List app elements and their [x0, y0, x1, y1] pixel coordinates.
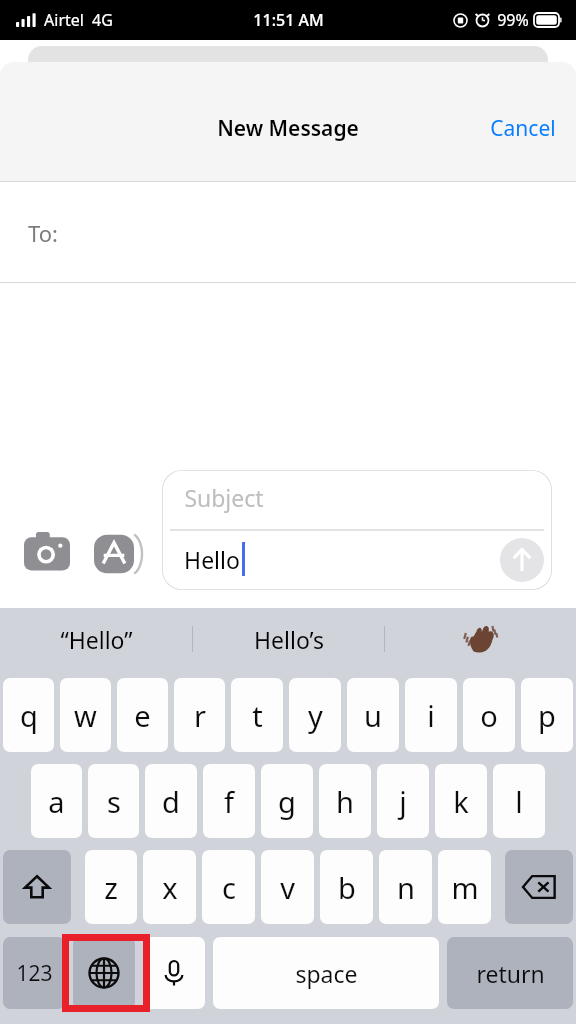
staticText: e: [134, 696, 151, 735]
button[interactable]: e: [117, 678, 168, 752]
button[interactable]: t: [231, 678, 283, 752]
button[interactable]: z: [85, 850, 137, 924]
staticText: c: [222, 868, 236, 907]
staticText: “Hello”: [60, 624, 133, 655]
staticText: w: [74, 696, 97, 735]
staticText: New Message: [217, 114, 359, 143]
staticText: j: [399, 782, 407, 821]
button[interactable]: r: [174, 678, 225, 752]
button[interactable]: l: [493, 764, 545, 838]
staticText: z: [104, 868, 118, 907]
button[interactable]: y: [289, 678, 341, 752]
staticText: Hello’s: [254, 624, 324, 655]
button[interactable]: space: [213, 937, 439, 1009]
staticText: b: [338, 868, 356, 907]
button[interactable]: Send: [500, 538, 544, 582]
staticText: t: [252, 696, 263, 735]
staticText: n: [397, 868, 415, 907]
staticText: 99%: [497, 9, 529, 31]
button[interactable]: m: [438, 850, 491, 924]
button[interactable]: p: [521, 678, 573, 752]
button[interactable]: Change keyboard language: [73, 937, 135, 1009]
button[interactable]: i: [405, 678, 457, 752]
staticText: p: [538, 696, 556, 735]
button[interactable]: k: [435, 764, 487, 838]
button[interactable]: n: [379, 850, 432, 924]
button[interactable]: v: [261, 850, 314, 924]
staticText: l: [515, 782, 523, 821]
button[interactable]: return: [447, 937, 573, 1009]
staticText: f: [224, 782, 234, 821]
staticText: 11:51 AM: [253, 9, 324, 31]
staticText: q: [20, 696, 38, 735]
staticText: space: [295, 958, 358, 989]
button[interactable]: Cancel: [470, 104, 576, 153]
staticText: m: [451, 868, 479, 907]
staticText: Subject: [184, 482, 264, 513]
staticText: To:: [28, 218, 58, 248]
staticText: Airtel: [44, 9, 84, 31]
button[interactable]: s: [88, 764, 139, 838]
button[interactable]: Dictation: [143, 937, 205, 1009]
button[interactable]: j: [377, 764, 429, 838]
button[interactable]: 123: [3, 937, 65, 1009]
button[interactable]: w: [60, 678, 111, 752]
button[interactable]: “Hello”: [0, 608, 192, 670]
staticText: i: [427, 696, 435, 735]
button[interactable]: Shift: [3, 850, 71, 924]
button[interactable]: a: [31, 764, 82, 838]
button[interactable]: f: [203, 764, 255, 838]
staticText: r: [194, 696, 206, 735]
button[interactable]: Camera: [24, 530, 70, 576]
button[interactable]: q: [3, 678, 54, 752]
staticText: d: [162, 782, 180, 821]
button[interactable]: d: [145, 764, 197, 838]
staticText: 123: [16, 959, 53, 988]
button[interactable]: Subject: [162, 470, 552, 590]
staticText: s: [107, 782, 121, 821]
button[interactable]: h: [319, 764, 371, 838]
button[interactable]: Backspace: [505, 850, 573, 924]
staticText: g: [278, 782, 296, 821]
staticText: 4G: [92, 9, 113, 31]
button[interactable]: App Store apps: [94, 532, 144, 576]
button[interactable]: b: [320, 850, 373, 924]
staticText: Cancel: [490, 114, 556, 143]
staticText: return: [476, 958, 545, 989]
button[interactable]: x: [143, 850, 196, 924]
button[interactable]: u: [347, 678, 399, 752]
staticText: x: [162, 868, 178, 907]
button[interactable]: g: [261, 764, 313, 838]
button[interactable]: Hello’s: [193, 608, 384, 670]
staticText: h: [336, 782, 354, 821]
staticText: k: [453, 782, 469, 821]
staticText: a: [48, 782, 65, 821]
button[interactable]: c: [202, 850, 255, 924]
button[interactable]: [385, 608, 576, 670]
staticText: v: [280, 868, 295, 907]
button[interactable]: To:: [0, 182, 576, 283]
staticText: Hello: [184, 544, 240, 575]
staticText: u: [364, 696, 382, 735]
button[interactable]: o: [463, 678, 515, 752]
staticText: o: [480, 696, 498, 735]
staticText: y: [308, 696, 323, 735]
